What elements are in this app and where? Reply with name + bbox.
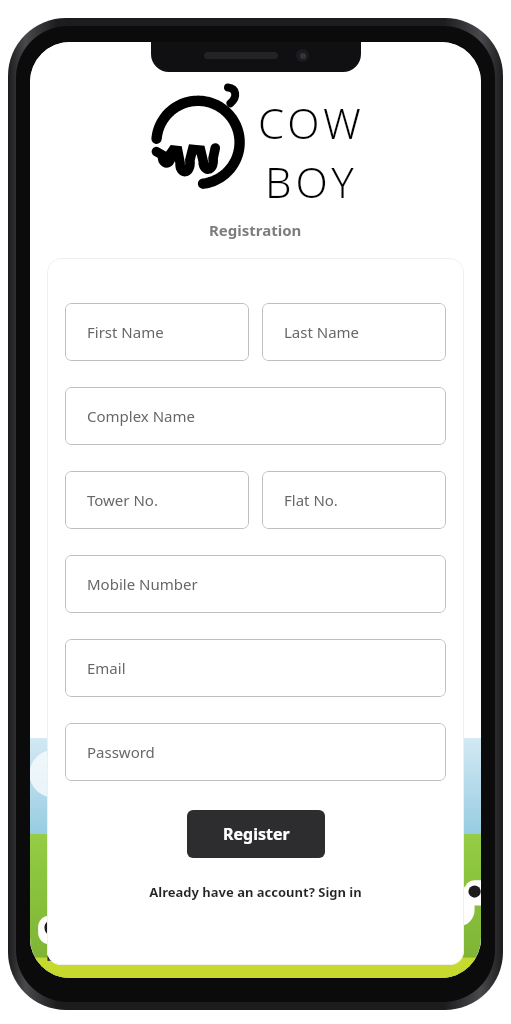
staticText: BOY bbox=[265, 153, 358, 210]
staticText: Tower No. bbox=[87, 490, 158, 510]
staticText: Mobile Number bbox=[87, 574, 198, 594]
staticText: Register bbox=[223, 823, 290, 845]
button[interactable]: Complex Name bbox=[65, 387, 446, 445]
button[interactable]: Email bbox=[65, 639, 446, 697]
staticText: Complex Name bbox=[87, 406, 195, 426]
button[interactable]: Flat No. bbox=[262, 471, 446, 529]
button[interactable]: Register bbox=[187, 810, 325, 858]
button[interactable]: Already have an account? Sign in bbox=[143, 880, 368, 904]
staticText: First Name bbox=[87, 322, 164, 342]
button[interactable]: Last Name bbox=[262, 303, 446, 361]
staticText: COW bbox=[258, 94, 365, 151]
staticText: Already have an account? Sign in bbox=[149, 883, 362, 901]
staticText: Email bbox=[87, 658, 126, 678]
button[interactable]: Tower No. bbox=[65, 471, 249, 529]
button[interactable]: First Name bbox=[65, 303, 249, 361]
staticText: Flat No. bbox=[284, 490, 338, 510]
staticText: Last Name bbox=[284, 322, 360, 342]
staticText: Password bbox=[87, 742, 155, 762]
staticText: Registration bbox=[209, 220, 302, 240]
button[interactable]: Password bbox=[65, 723, 446, 781]
button[interactable]: Mobile Number bbox=[65, 555, 446, 613]
